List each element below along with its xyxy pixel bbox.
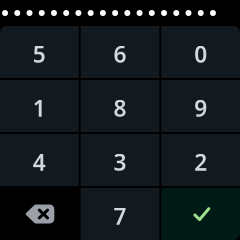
staticText: 9 bbox=[194, 93, 207, 123]
staticText: 5 bbox=[33, 39, 46, 69]
button[interactable]: 3 bbox=[81, 134, 159, 186]
staticText: 3 bbox=[113, 147, 126, 177]
button[interactable]: Confirm bbox=[161, 188, 240, 240]
staticText: 7 bbox=[113, 201, 126, 231]
button[interactable]: 5 bbox=[0, 26, 79, 78]
staticText: 6 bbox=[113, 39, 126, 69]
button[interactable]: 6 bbox=[81, 26, 159, 78]
button[interactable]: 0 bbox=[161, 26, 240, 78]
button[interactable]: 8 bbox=[81, 80, 159, 132]
button[interactable]: Delete bbox=[0, 188, 79, 240]
staticText: 4 bbox=[33, 147, 46, 177]
staticText: 8 bbox=[113, 93, 126, 123]
staticText: 1 bbox=[33, 93, 46, 123]
button[interactable]: 9 bbox=[161, 80, 240, 132]
button[interactable]: 2 bbox=[161, 134, 240, 186]
staticText: 2 bbox=[194, 147, 207, 177]
button[interactable]: 4 bbox=[0, 134, 79, 186]
button[interactable]: 1 bbox=[0, 80, 79, 132]
button[interactable]: 7 bbox=[81, 188, 159, 240]
staticText: 0 bbox=[194, 39, 207, 69]
